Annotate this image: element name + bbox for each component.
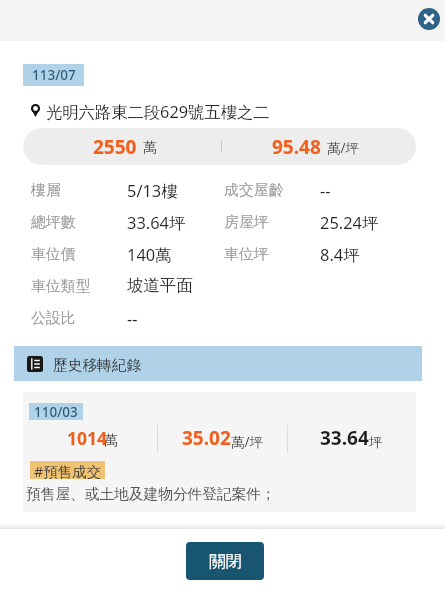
staticText: 坪 <box>369 434 383 451</box>
staticText: 萬/坪 <box>231 433 264 451</box>
staticText: 樓層 <box>31 181 61 200</box>
staticText: 車位坪 <box>224 245 269 264</box>
staticText: 25.24坪 <box>320 211 379 233</box>
staticText: 公設比 <box>31 309 76 328</box>
staticText: 坡道平面 <box>127 275 193 296</box>
staticText: 光明六路東二段629號五樓之二 <box>46 101 270 123</box>
staticText: 33.64 <box>320 425 369 451</box>
staticText: 35.02 <box>182 425 231 451</box>
staticText: 車位類型 <box>31 277 91 296</box>
staticText: 113/07 <box>32 66 76 84</box>
staticText: 關閉 <box>209 551 242 572</box>
staticText: 8.4坪 <box>320 243 360 265</box>
staticText: 車位價 <box>31 245 76 264</box>
staticText: 95.48 <box>272 134 321 160</box>
button[interactable]: 關閉 <box>186 542 264 580</box>
staticText: 萬 <box>104 432 118 450</box>
staticText: 房屋坪 <box>224 213 269 232</box>
staticText: 萬/坪 <box>327 139 360 157</box>
staticText: #預售成交 <box>34 461 102 479</box>
staticText: 成交屋齡 <box>224 181 284 200</box>
staticText: 140萬 <box>127 243 172 265</box>
staticText: 33.64坪 <box>127 211 186 233</box>
staticText: -- <box>320 179 331 201</box>
staticText: 1014 <box>67 426 108 450</box>
staticText: 110/03 <box>34 403 78 420</box>
staticText: 2550 <box>93 134 137 160</box>
staticText: 萬 <box>143 139 157 157</box>
staticText: -- <box>127 307 138 329</box>
staticText: 5/13樓 <box>127 179 178 201</box>
staticText: 總坪數 <box>31 213 76 232</box>
staticText: 預售屋、或土地及建物分件登記案件； <box>26 485 276 504</box>
button[interactable]: Close <box>418 8 440 30</box>
staticText: 歷史移轉紀錄 <box>53 356 142 375</box>
